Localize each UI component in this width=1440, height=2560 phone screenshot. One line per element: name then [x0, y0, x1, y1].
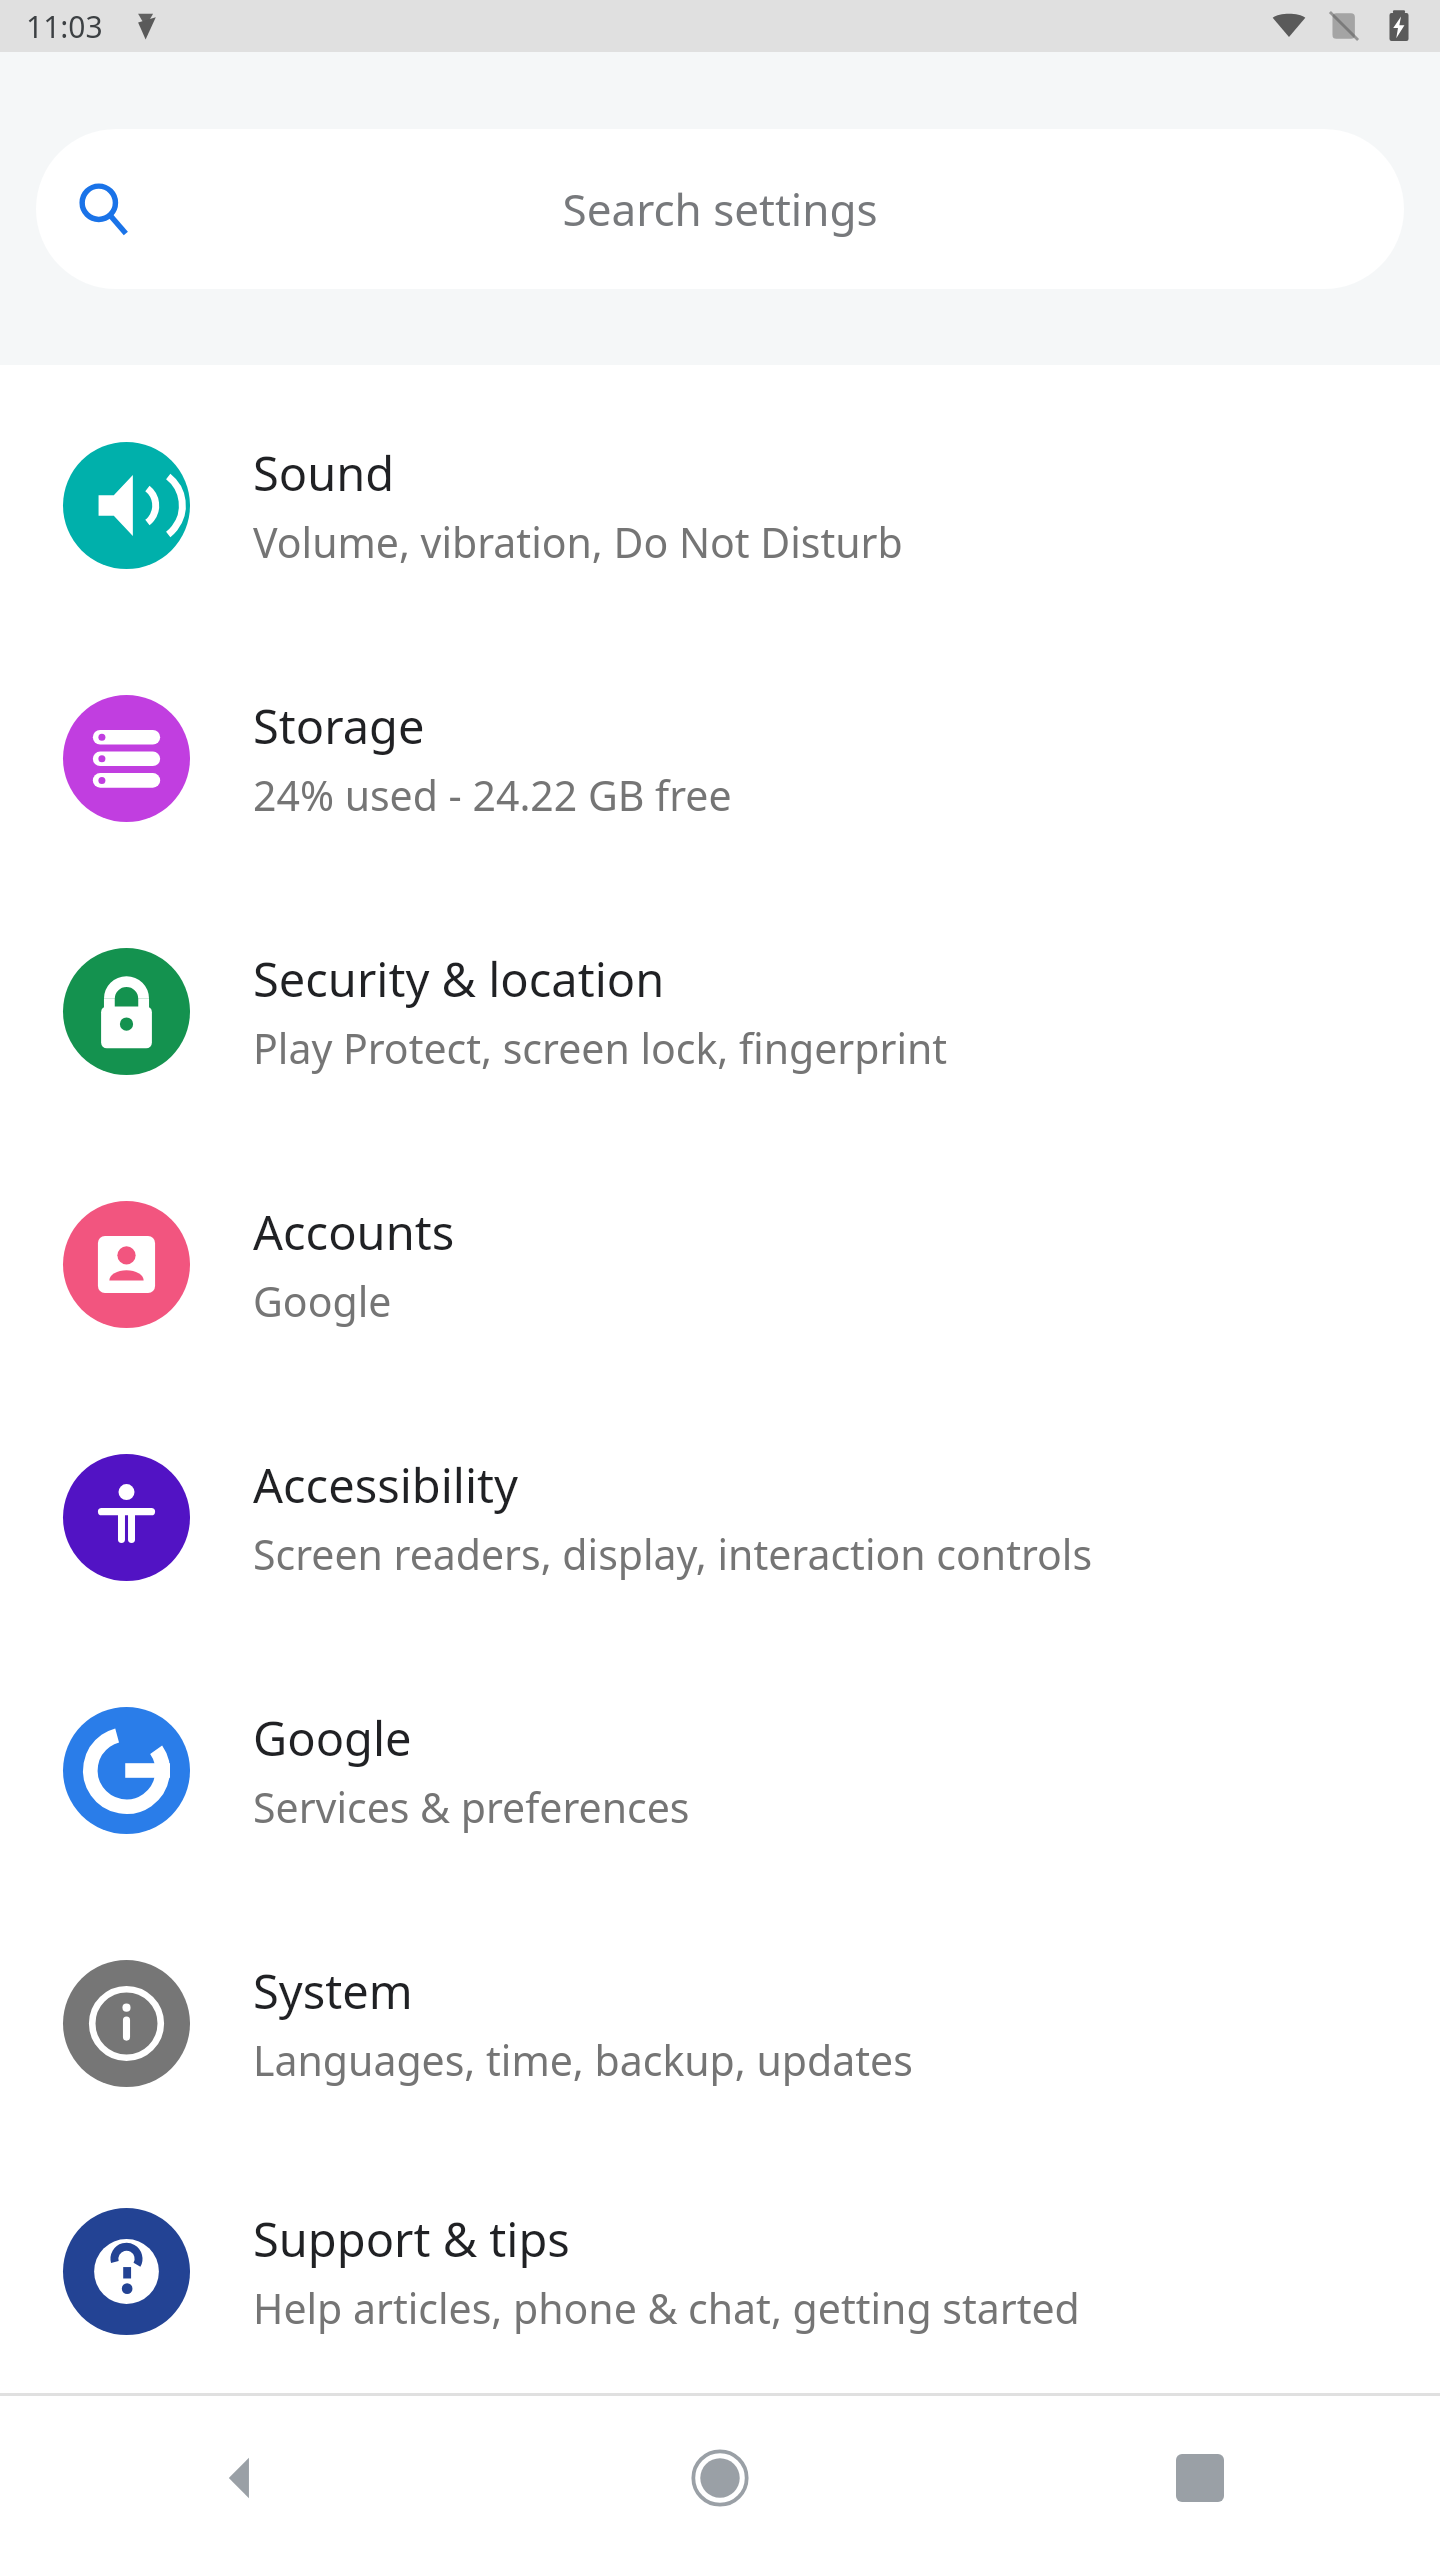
staticText: Accessibility: [253, 1453, 519, 1517]
button[interactable]: Search settings: [36, 129, 1404, 289]
staticText: Screen readers, display, interaction con…: [253, 1526, 1093, 1582]
button[interactable]: Back: [0, 2396, 480, 2560]
staticText: 11:03: [26, 6, 103, 47]
button[interactable]: Google: [0, 1644, 1440, 1897]
button[interactable]: Sound: [0, 379, 1440, 632]
staticText: Sound: [253, 441, 395, 505]
staticText: Google: [253, 1273, 392, 1329]
staticText: Google: [253, 1706, 412, 1770]
button[interactable]: Accessibility: [0, 1391, 1440, 1644]
staticText: Play Protect, screen lock, fingerprint: [253, 1020, 948, 1076]
staticText: 24% used - 24.22 GB free: [253, 767, 732, 823]
staticText: Services & preferences: [253, 1779, 690, 1835]
staticText: Storage: [253, 694, 425, 758]
button[interactable]: Home: [480, 2396, 960, 2560]
staticText: Security & location: [253, 947, 665, 1011]
button[interactable]: Storage: [0, 632, 1440, 885]
staticText: Search settings: [562, 179, 878, 239]
button[interactable]: Security & location: [0, 885, 1440, 1138]
staticText: Volume, vibration, Do Not Disturb: [253, 514, 903, 570]
staticText: Languages, time, backup, updates: [253, 2032, 913, 2088]
button[interactable]: Accounts: [0, 1138, 1440, 1391]
staticText: Support & tips: [253, 2207, 570, 2271]
button[interactable]: Support & tips: [0, 2150, 1440, 2393]
staticText: Help articles, phone & chat, getting sta…: [253, 2280, 1080, 2336]
staticText: Accounts: [253, 1200, 455, 1264]
staticText: System: [253, 1959, 413, 2023]
button[interactable]: Recent apps: [960, 2396, 1440, 2560]
button[interactable]: System: [0, 1897, 1440, 2150]
